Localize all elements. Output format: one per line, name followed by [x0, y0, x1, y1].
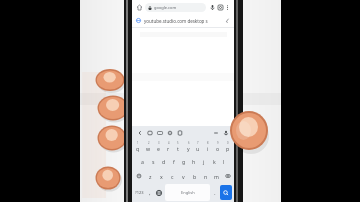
button[interactable]: 0	[223, 139, 233, 154]
button[interactable]: More options	[224, 4, 231, 11]
button[interactable]: 4	[163, 139, 173, 154]
staticText: 4	[168, 141, 170, 145]
staticText: e	[157, 145, 160, 152]
button[interactable]: Backspace	[223, 170, 232, 182]
staticText: English	[181, 190, 195, 195]
staticText: v	[182, 173, 185, 180]
button[interactable]: Lens	[216, 3, 224, 11]
staticText: 9	[217, 141, 219, 145]
staticText: n	[204, 173, 208, 180]
staticText: m	[214, 173, 219, 180]
staticText: y	[187, 145, 190, 152]
staticText: f	[173, 158, 175, 165]
button[interactable]: google.com	[145, 3, 206, 12]
staticText: 7	[197, 141, 199, 145]
button[interactable]: Comma	[146, 184, 154, 201]
staticText: r	[167, 145, 170, 152]
button[interactable]: Settings	[165, 128, 175, 138]
button[interactable]: youtube.studio.com desktop s	[132, 14, 234, 27]
button[interactable]: Search	[220, 185, 232, 200]
staticText: q	[136, 145, 140, 152]
button[interactable]: Voice search	[208, 3, 216, 11]
button[interactable]: v	[178, 169, 189, 183]
staticText: ?123	[135, 190, 144, 195]
staticText: a	[141, 158, 144, 165]
button[interactable]: m	[211, 169, 222, 183]
staticText: .	[214, 189, 216, 197]
button[interactable]: 8	[203, 139, 213, 154]
staticText: 8	[207, 141, 209, 145]
staticText: k	[213, 158, 216, 165]
button[interactable]: GIF	[155, 128, 165, 138]
button[interactable]: English	[165, 184, 210, 201]
staticText: j	[203, 158, 205, 165]
staticText: g	[182, 158, 186, 165]
button[interactable]: Clipboard	[175, 128, 185, 138]
button[interactable]: Back	[135, 128, 145, 138]
button[interactable]: d	[159, 154, 169, 169]
button[interactable]: f	[169, 154, 179, 169]
staticText: i	[207, 145, 209, 152]
staticText: x	[160, 173, 163, 180]
staticText: 0	[227, 141, 229, 145]
button[interactable]: 9	[213, 139, 223, 154]
button[interactable]: s	[148, 154, 159, 169]
button[interactable]: ?123	[133, 184, 146, 201]
staticText: w	[146, 145, 151, 152]
button[interactable]: Minimize	[211, 128, 221, 138]
staticText: 1	[137, 141, 139, 145]
staticText: u	[196, 145, 200, 152]
button[interactable]: Shift	[134, 170, 143, 182]
button[interactable]: 5	[173, 139, 183, 154]
staticText: z	[149, 173, 152, 180]
staticText: h	[192, 158, 196, 165]
button[interactable]: Home	[135, 3, 143, 11]
button[interactable]: z	[144, 169, 156, 183]
staticText: 2	[148, 141, 150, 145]
button[interactable]: a	[137, 154, 148, 169]
button[interactable]: x	[156, 169, 167, 183]
staticText: 6	[188, 141, 190, 145]
staticText: o	[216, 145, 220, 152]
button[interactable]: l	[219, 154, 229, 169]
button[interactable]: 7	[193, 139, 203, 154]
button[interactable]: 1	[133, 139, 143, 154]
staticText: youtube.studio.com desktop s	[144, 18, 225, 24]
button[interactable]: Voice input	[221, 128, 231, 138]
button[interactable]: g	[179, 154, 189, 169]
button[interactable]: Period	[211, 184, 219, 201]
staticText: l	[223, 158, 225, 165]
button[interactable]: h	[189, 154, 199, 169]
button[interactable]: c	[167, 169, 178, 183]
staticText: b	[193, 173, 197, 180]
staticText: 3	[158, 141, 160, 145]
staticText: google.com	[154, 5, 177, 10]
button[interactable]: Stickers	[145, 128, 155, 138]
button[interactable]: b	[189, 169, 200, 183]
staticText: s	[152, 158, 155, 165]
button[interactable]: n	[200, 169, 211, 183]
staticText: 5	[177, 141, 179, 145]
button[interactable]: k	[209, 154, 219, 169]
staticText: p	[226, 145, 230, 152]
button[interactable]: Change language	[154, 184, 164, 201]
staticText: t	[177, 145, 179, 152]
button[interactable]: j	[199, 154, 209, 169]
staticText: c	[171, 173, 174, 180]
staticText: d	[162, 158, 166, 165]
button[interactable]: 2	[143, 139, 153, 154]
staticText: ,	[149, 189, 151, 197]
button[interactable]: 6	[183, 139, 193, 154]
button[interactable]: 3	[153, 139, 163, 154]
